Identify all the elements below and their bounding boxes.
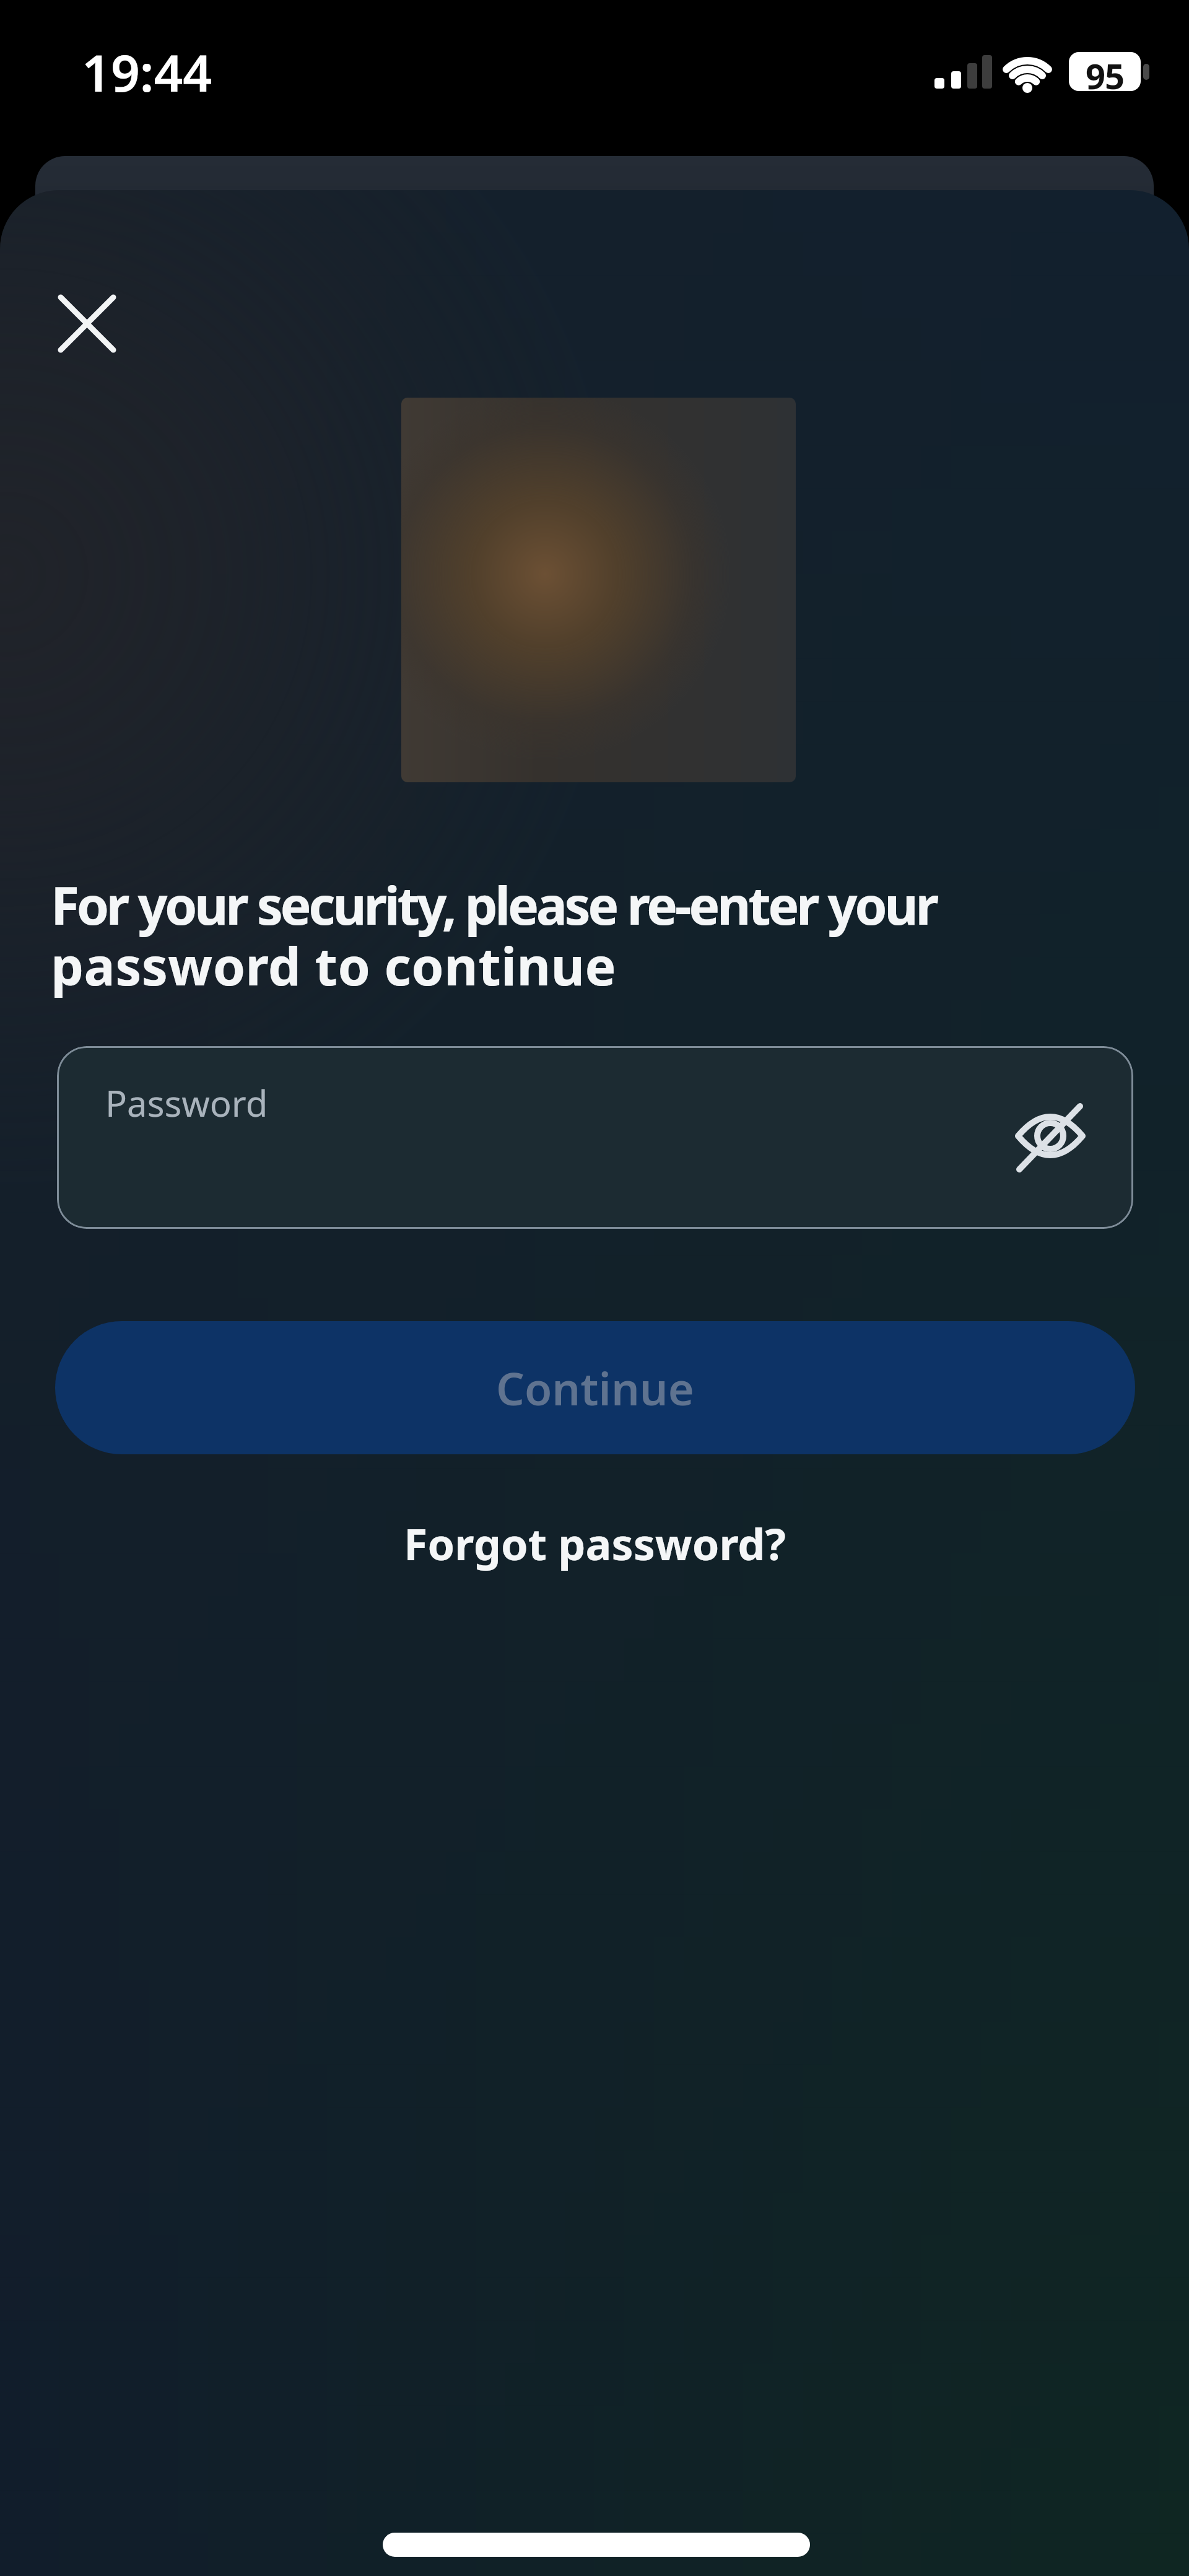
button[interactable]: Password [57, 1046, 1133, 1229]
staticText: 19:44 [82, 37, 212, 107]
staticText: Continue [496, 1358, 694, 1418]
staticText: password to continue [51, 930, 617, 1000]
button[interactable]: Forgot password? [404, 1514, 786, 1573]
button[interactable] [40, 277, 133, 370]
staticText: Password [105, 1078, 268, 1127]
staticText: 95 [1086, 52, 1125, 91]
staticText: Forgot password? [404, 1514, 786, 1573]
button[interactable]: Continue [55, 1321, 1135, 1454]
staticText: For your security, please re-enter your [51, 869, 936, 940]
